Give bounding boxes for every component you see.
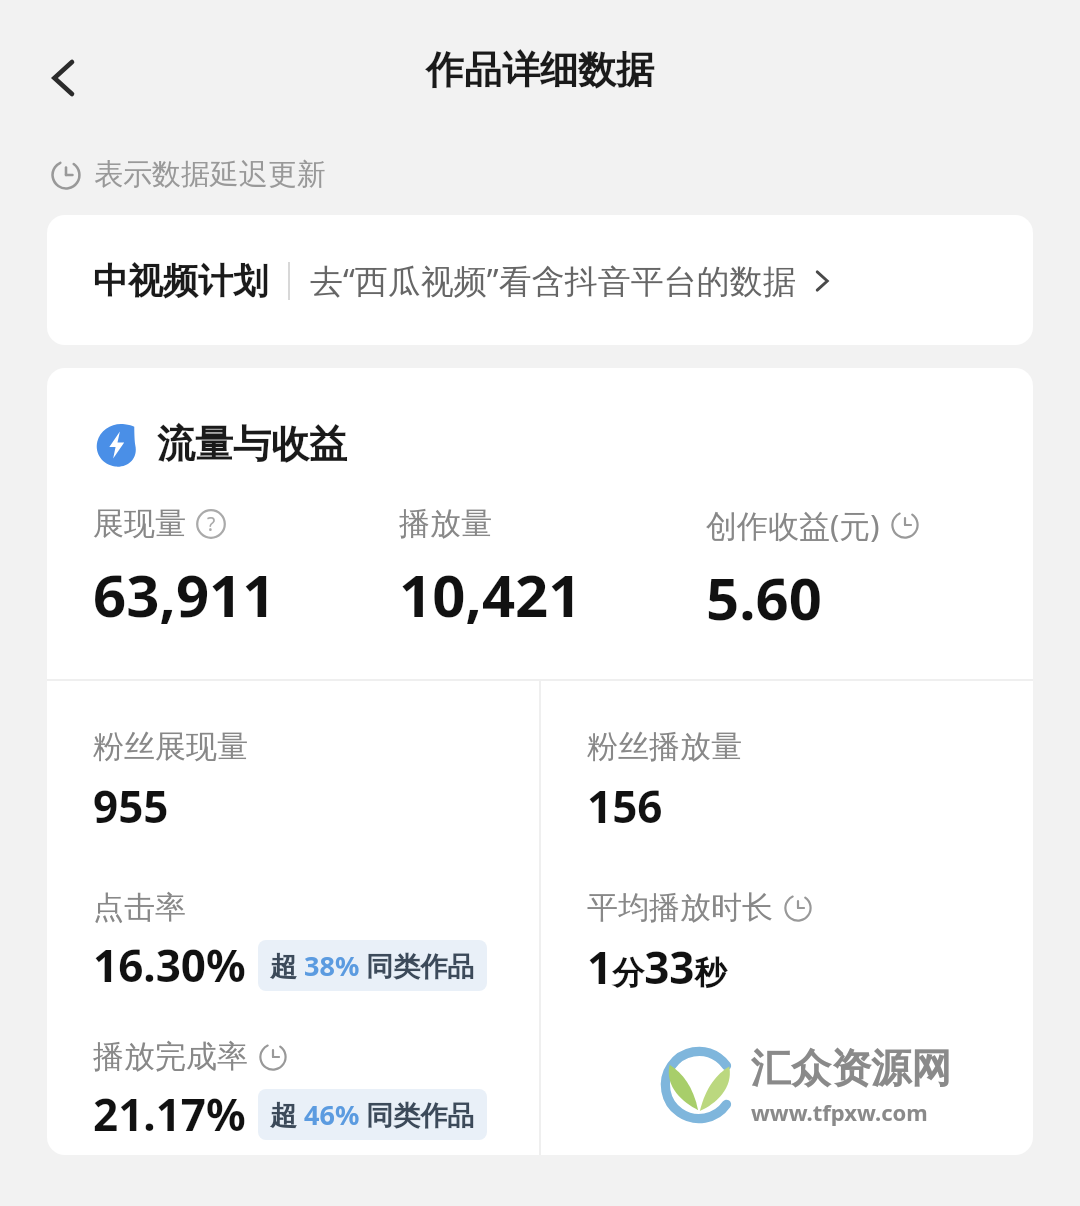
staticText: 5.60	[706, 558, 822, 637]
staticText: 作品详细数据	[426, 46, 654, 94]
staticText: 播放完成率	[93, 1037, 248, 1076]
staticText: 创作收益(元)	[706, 504, 880, 546]
staticText: 流量与收益	[157, 420, 347, 468]
staticText: 粉丝展现量	[93, 727, 248, 766]
button[interactable]: Back	[32, 46, 96, 110]
staticText: 156	[587, 776, 663, 836]
staticText: 63,911	[93, 555, 276, 634]
staticText: 955	[93, 776, 169, 836]
button[interactable]: 点击率	[93, 888, 487, 995]
staticText: 16.30%	[93, 935, 246, 995]
staticText: 粉丝播放量	[587, 727, 742, 766]
button[interactable]: 播放完成率	[93, 1037, 487, 1144]
button[interactable]: 展现量	[93, 504, 399, 634]
staticText: 点击率	[93, 888, 186, 927]
staticText: 1分33秒	[587, 937, 727, 997]
button[interactable]: 粉丝展现量	[93, 727, 248, 836]
staticText: 超 38% 同类作品	[270, 947, 475, 984]
staticText: 汇众资源网	[751, 1043, 951, 1093]
button[interactable]: 平均播放时长	[587, 888, 813, 997]
staticText: 播放量	[399, 504, 492, 543]
staticText: 表示数据延迟更新	[94, 156, 326, 193]
button[interactable]: 创作收益(元)	[706, 504, 1013, 637]
button[interactable]: 粉丝播放量	[587, 727, 742, 836]
staticText: 平均播放时长	[587, 888, 773, 927]
staticText: 21.17%	[93, 1084, 246, 1144]
staticText: ?	[207, 511, 216, 537]
staticText: 中视频计划	[93, 259, 268, 303]
button[interactable]: 中视频计划	[47, 215, 1033, 345]
staticText: 去“西瓜视频”看含抖音平台的数据	[310, 258, 796, 303]
button[interactable]: 播放量	[399, 504, 706, 634]
staticText: 展现量	[93, 504, 186, 543]
staticText: 超 46% 同类作品	[270, 1096, 475, 1133]
staticText: 10,421	[399, 555, 582, 634]
staticText: www.tfpxw.com	[751, 1097, 928, 1127]
